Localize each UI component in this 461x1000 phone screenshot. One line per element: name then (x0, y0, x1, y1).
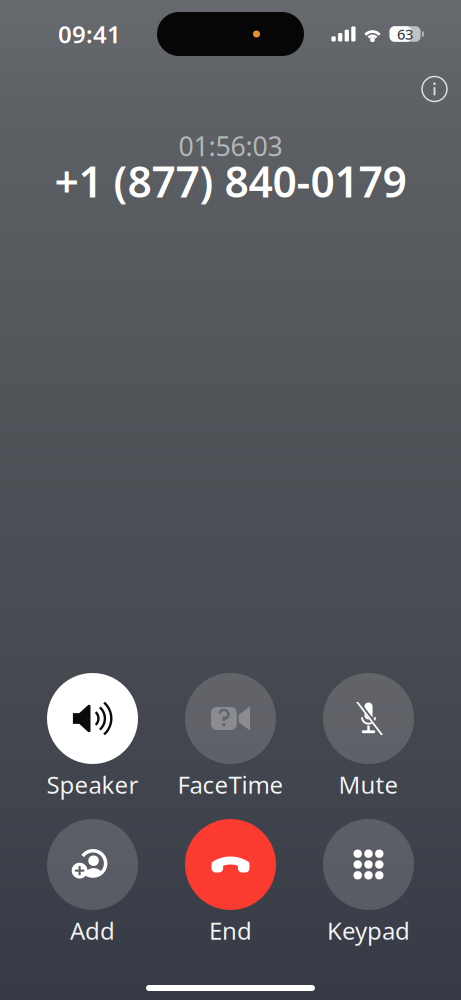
button[interactable]: Keypad (323, 819, 414, 943)
button[interactable]: Add (47, 819, 138, 943)
button[interactable]: End (185, 819, 276, 943)
staticText: Mute (338, 769, 398, 800)
button[interactable]: FaceTime (185, 673, 276, 797)
staticText: FaceTime (177, 769, 283, 800)
staticText: 01:56:03 (178, 128, 282, 164)
staticText: 09:41 (58, 18, 121, 50)
button[interactable]: Call details (414, 69, 454, 109)
staticText: Speaker (46, 769, 138, 800)
staticText: Add (70, 915, 115, 946)
staticText: Keypad (327, 915, 410, 946)
staticText: 63 (397, 24, 413, 44)
staticText: +1 (877) 840-0179 (54, 153, 406, 209)
button[interactable]: Mute (323, 673, 414, 797)
button[interactable]: Speaker (47, 673, 138, 797)
staticText: End (209, 915, 252, 946)
